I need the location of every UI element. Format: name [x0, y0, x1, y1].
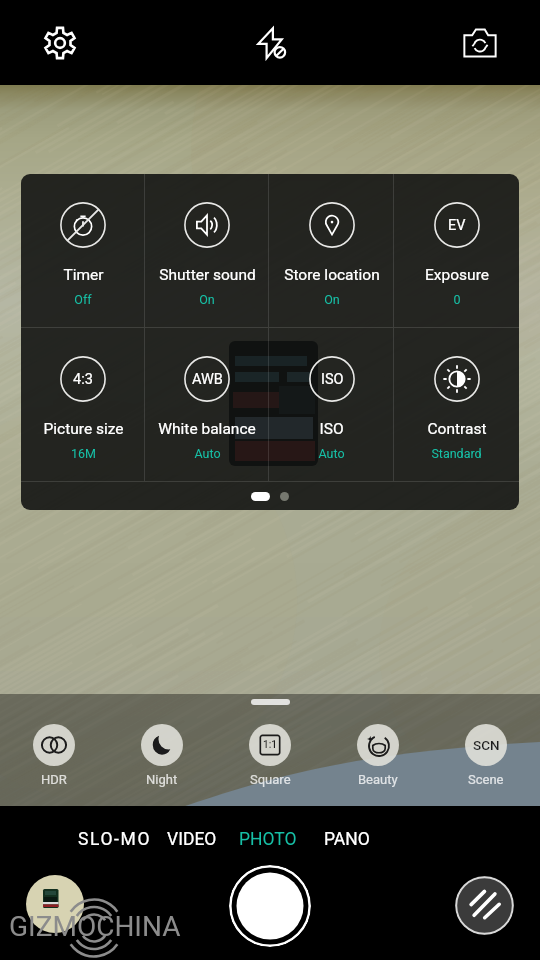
staticText: SLO-MO: [78, 829, 152, 850]
staticText: 0: [453, 292, 461, 307]
button[interactable]: SCN: [432, 724, 540, 787]
button[interactable]: PHOTO: [229, 822, 307, 857]
staticText: White balance: [158, 420, 256, 438]
button[interactable]: Shutter: [229, 865, 311, 947]
button[interactable]: VIDEO: [157, 822, 227, 857]
button[interactable]: Timer: [21, 174, 145, 327]
staticText: SCN: [473, 737, 500, 753]
button[interactable]: Store location: [269, 174, 394, 327]
staticText: Auto: [194, 446, 221, 461]
staticText: Scene: [468, 772, 504, 787]
staticText: On: [324, 292, 340, 307]
staticText: Night: [146, 772, 178, 787]
button[interactable]: SLO-MO: [68, 822, 162, 857]
button[interactable]: Flash off: [244, 17, 296, 69]
staticText: Auto: [318, 446, 345, 461]
staticText: EV: [448, 217, 466, 234]
button[interactable]: ISO: [269, 328, 394, 481]
button[interactable]: Switch camera: [454, 17, 506, 69]
button[interactable]: Filters: [455, 876, 514, 935]
button[interactable]: 1:1: [216, 724, 324, 787]
staticText: PANO: [324, 829, 370, 850]
staticText: On: [199, 292, 215, 307]
staticText: Standard: [431, 446, 482, 461]
staticText: ISO: [321, 371, 344, 388]
staticText: Contrast: [427, 420, 487, 438]
staticText: GIZMOCHINA: [9, 910, 181, 943]
button[interactable]: Shutter sound: [145, 174, 269, 327]
staticText: Store location: [284, 266, 380, 284]
button[interactable]: Gallery: [26, 875, 84, 933]
staticText: ISO: [319, 420, 344, 438]
staticText: PHOTO: [239, 829, 297, 850]
button[interactable]: Settings: [34, 17, 86, 69]
button[interactable]: AWB: [145, 328, 269, 481]
staticText: HDR: [41, 772, 67, 787]
staticText: Beauty: [358, 772, 398, 787]
button[interactable]: HDR: [0, 724, 108, 787]
staticText: Exposure: [425, 266, 489, 284]
staticText: 4:3: [73, 371, 93, 388]
staticText: 16M: [71, 446, 96, 461]
button[interactable]: Contrast: [394, 328, 519, 481]
staticText: Off: [74, 292, 92, 307]
staticText: Timer: [63, 266, 104, 284]
staticText: VIDEO: [167, 829, 217, 850]
staticText: AWB: [192, 371, 223, 388]
button[interactable]: Beauty: [324, 724, 432, 787]
button[interactable]: Night: [108, 724, 216, 787]
staticText: 1:1: [263, 739, 278, 751]
staticText: Picture size: [43, 420, 124, 438]
staticText: Square: [250, 772, 291, 787]
button[interactable]: 4:3: [21, 328, 145, 481]
button[interactable]: PANO: [314, 822, 380, 857]
button[interactable]: EV: [394, 174, 519, 327]
staticText: Shutter sound: [159, 266, 256, 284]
